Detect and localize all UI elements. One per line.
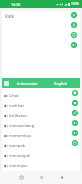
button[interactable]: meninjau [2,161,80,171]
button[interactable]: Lihat [2,91,80,101]
button[interactable]: nampak [2,141,80,151]
button[interactable]: Play [72,130,78,136]
button[interactable]: Share [72,110,78,116]
button[interactable]: Indonesian [10,81,44,86]
button[interactable]: Home [36,172,46,182]
staticText: melihat [9,103,24,109]
button[interactable]: Back [56,172,66,182]
button[interactable]: kelihatan [2,111,80,121]
button[interactable]: meneegok [2,151,80,161]
staticText: meneegok [9,153,30,159]
staticText: nampak [9,143,26,149]
staticText: Indonesian [17,81,38,86]
staticText: meninjau [9,163,28,169]
button[interactable]: Clear [71,12,77,18]
button[interactable]: English [44,81,78,86]
button[interactable]: More [72,140,78,146]
button[interactable]: Voice input [71,22,77,28]
button[interactable]: melihat [2,101,80,111]
button[interactable]: Recents [16,172,26,182]
staticText: English [54,81,68,86]
staticText: kelihatan [9,113,28,119]
staticText: memeriksa [9,133,31,139]
staticText: memandang [9,123,35,129]
button[interactable]: memandang [2,121,80,131]
button[interactable]: Dictionary [3,80,10,87]
staticText: Lihat [9,93,19,99]
button[interactable]: memeriksa [2,131,80,141]
staticText: 100% [71,2,80,6]
staticText: 14:38 [11,2,21,7]
button[interactable]: Listen [72,120,78,126]
staticText: look [5,13,14,19]
button[interactable]: Copy [72,90,78,96]
button[interactable]: History [71,32,77,38]
button[interactable]: Favourite [72,100,78,106]
button[interactable]: Speak [71,42,77,48]
